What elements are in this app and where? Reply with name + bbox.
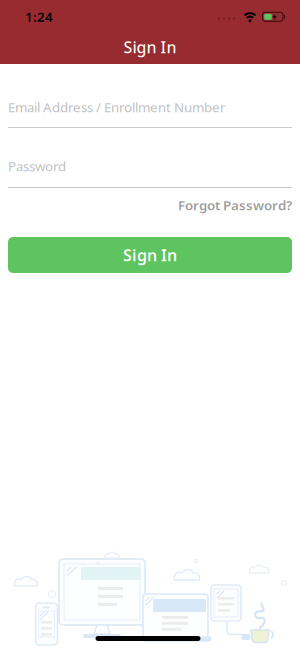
staticText: Password [8, 157, 66, 175]
staticText: Sign In [123, 36, 176, 58]
button[interactable]: Password [8, 152, 292, 192]
staticText: Email Address / Enrollment Number [8, 98, 226, 116]
staticText: Forgot Password? [178, 196, 292, 214]
staticText: Sign In [123, 244, 177, 266]
button[interactable]: Sign In [8, 237, 292, 273]
button[interactable]: Email Address / Enrollment Number [8, 93, 292, 133]
button[interactable]: Forgot Password? [8, 196, 292, 214]
staticText: 1:24 [25, 8, 53, 25]
